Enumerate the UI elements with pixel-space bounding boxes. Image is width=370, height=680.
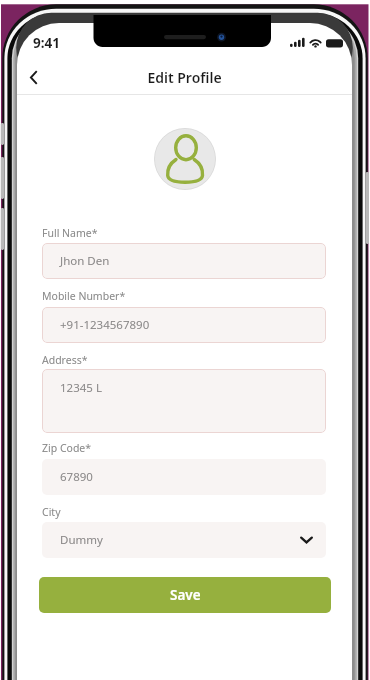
button[interactable]: 67890 bbox=[42, 459, 326, 495]
button[interactable]: +91-1234567890 bbox=[42, 307, 326, 343]
button[interactable]: Back bbox=[17, 60, 50, 94]
staticText: Full Name* bbox=[42, 226, 98, 240]
staticText: Mobile Number* bbox=[42, 289, 126, 303]
staticText: 9:41 bbox=[33, 34, 60, 52]
staticText: +91-1234567890 bbox=[60, 317, 150, 333]
button[interactable]: 12345 L bbox=[42, 369, 326, 433]
button[interactable]: Save bbox=[39, 577, 331, 613]
staticText: City bbox=[42, 505, 61, 519]
staticText: 12345 L bbox=[60, 380, 102, 396]
staticText: Dummy bbox=[60, 532, 103, 548]
button[interactable]: Jhon Den bbox=[42, 243, 326, 279]
staticText: Address* bbox=[42, 353, 88, 367]
staticText: Jhon Den bbox=[60, 253, 110, 269]
staticText: Save bbox=[170, 586, 201, 604]
button[interactable]: Dummy bbox=[42, 522, 326, 558]
staticText: Zip Code* bbox=[42, 441, 92, 455]
button[interactable]: Profile photo bbox=[154, 128, 216, 190]
staticText: 67890 bbox=[60, 469, 93, 485]
staticText: Edit Profile bbox=[17, 68, 352, 87]
